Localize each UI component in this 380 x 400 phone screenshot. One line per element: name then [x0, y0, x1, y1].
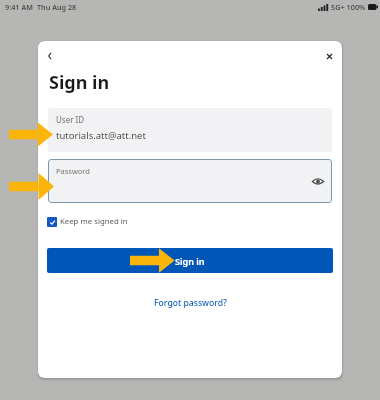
staticText: User ID — [56, 114, 85, 125]
button[interactable]: Close — [322, 49, 336, 63]
button[interactable]: Back — [42, 48, 58, 64]
staticText: Password — [56, 166, 90, 176]
staticText: Sign in — [49, 70, 110, 95]
staticText: Sign in — [175, 255, 205, 267]
button[interactable]: User ID — [48, 108, 332, 152]
button[interactable]: Sign in — [47, 248, 333, 273]
button[interactable]: Forgot password? — [154, 297, 227, 309]
staticText: Keep me signed in — [60, 216, 128, 227]
staticText: Thu Aug 28 — [37, 2, 77, 12]
button[interactable]: Keep me signed in — [47, 216, 128, 227]
staticText: 5G+ 100% — [331, 2, 366, 12]
staticText: tutorials.att@att.net — [56, 129, 146, 142]
button[interactable]: Show password — [311, 174, 325, 188]
staticText: 9:41 AM — [5, 2, 33, 12]
button[interactable]: Password — [48, 159, 332, 203]
